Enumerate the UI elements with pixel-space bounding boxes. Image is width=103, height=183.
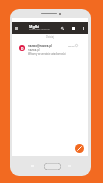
button[interactable]: Search (59, 25, 65, 31)
staticText: D (21, 46, 24, 51)
button[interactable]: D (12, 44, 88, 60)
staticText: Dzisiaj (46, 35, 54, 39)
button[interactable]: More options (80, 25, 86, 31)
staticText: Wszystkie skrzynki (29, 27, 50, 30)
staticText: nazwa.pl (28, 48, 40, 52)
button[interactable]: Folders (70, 25, 76, 31)
staticText: nazwa@nazwa.pl (28, 44, 52, 48)
staticText: Witamy w serwisie wiadomości (28, 52, 66, 56)
staticText: Mgłki (29, 24, 40, 29)
staticText: 08:30 (68, 44, 75, 47)
button[interactable]: Compose new message (75, 144, 84, 153)
button[interactable]: Navigation menu (13, 25, 19, 31)
